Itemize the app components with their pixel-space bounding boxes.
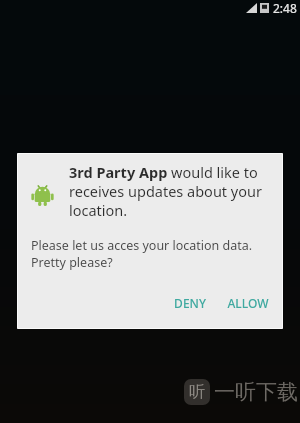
staticText: 听	[189, 382, 205, 402]
staticText: 3rd Party App would like to receives upd…	[69, 162, 271, 220]
other: App icon	[31, 184, 54, 207]
staticText: Please let us acces your location data. …	[31, 237, 269, 271]
button[interactable]: ALLOW	[219, 291, 277, 315]
button[interactable]: DENY	[166, 291, 214, 315]
staticText: 一听下载	[214, 379, 298, 405]
staticText: 2:48	[273, 0, 297, 16]
staticText: ALLOW	[227, 295, 269, 311]
staticText: DENY	[174, 295, 206, 311]
